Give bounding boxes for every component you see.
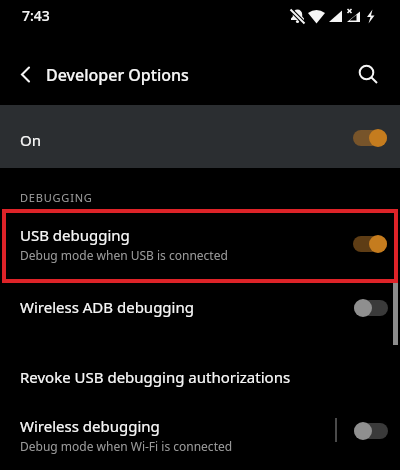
staticText: Wireless debugging: [20, 416, 160, 436]
staticText: Revoke USB debugging authorizations: [20, 367, 291, 387]
button[interactable]: Wireless debugging: [0, 410, 400, 470]
staticText: Debug mode when USB is connected: [20, 247, 228, 263]
staticText: On: [20, 130, 41, 150]
staticText: Developer Options: [46, 64, 189, 86]
button[interactable]: USB debugging: [2, 209, 398, 283]
staticText: Debug mode when Wi-Fi is connected: [20, 438, 233, 454]
staticText: USB debugging: [20, 225, 130, 245]
staticText: Wireless ADB debugging: [20, 297, 194, 317]
staticText: 7:43: [22, 6, 50, 25]
button[interactable]: Revoke USB debugging authorizations: [0, 358, 400, 394]
button[interactable]: [16, 64, 36, 84]
button[interactable]: [354, 60, 382, 88]
button[interactable]: Wireless ADB debugging: [0, 288, 400, 326]
button[interactable]: On: [0, 105, 400, 168]
staticText: DEBUGGING: [20, 190, 93, 205]
